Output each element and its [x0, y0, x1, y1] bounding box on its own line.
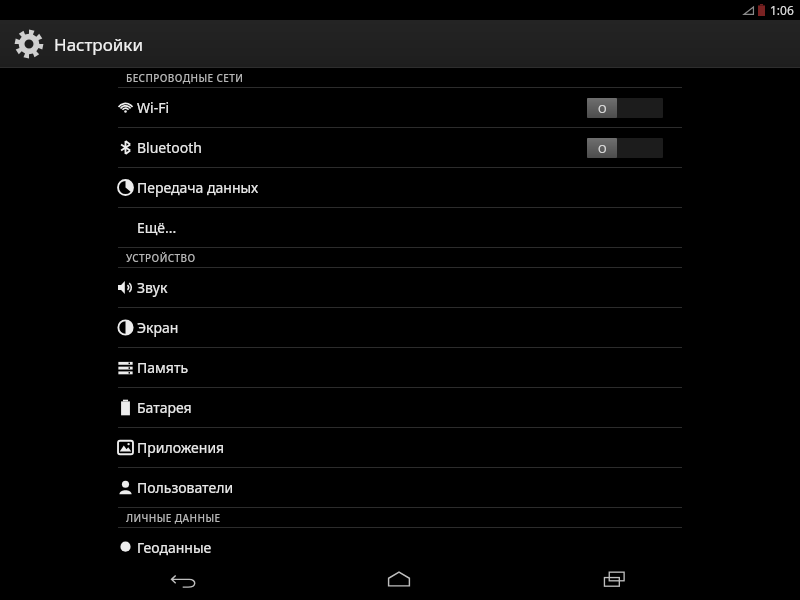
staticText: 1:06 — [770, 2, 794, 18]
staticText: Пользователи — [137, 478, 234, 497]
staticText: Экран — [137, 318, 179, 337]
staticText: Звук — [137, 278, 168, 297]
staticText: БЕСПРОВОДНЫЕ СЕТИ — [126, 71, 244, 85]
button[interactable]: Передача данных — [113, 168, 682, 207]
button[interactable]: Wi-Fi — [113, 88, 682, 127]
button[interactable]: Звук — [113, 268, 682, 307]
button[interactable]: Пользователи — [113, 468, 682, 507]
button[interactable]: Настройки — [0, 20, 800, 68]
staticText: ЛИЧНЫЕ ДАННЫЕ — [126, 511, 221, 525]
button[interactable]: Экран — [113, 308, 682, 347]
staticText: O — [598, 141, 607, 156]
button[interactable]: Геоданные — [113, 528, 682, 567]
button[interactable]: Главный экран — [368, 558, 430, 600]
staticText: Память — [137, 358, 189, 377]
button[interactable]: Переключатель — [587, 138, 663, 158]
staticText: Батарея — [137, 398, 192, 417]
button[interactable]: Недавние приложения — [584, 558, 646, 600]
button[interactable]: Переключатель — [587, 98, 663, 118]
button[interactable]: Приложения — [113, 428, 682, 467]
staticText: Передача данных — [137, 178, 259, 197]
staticText: Ещё... — [137, 218, 177, 237]
button[interactable]: Ещё... — [113, 208, 682, 247]
staticText: УСТРОЙСТВО — [126, 251, 196, 265]
staticText: Настройки — [54, 33, 143, 56]
button[interactable]: Bluetooth — [113, 128, 682, 167]
button[interactable]: Память — [113, 348, 682, 387]
staticText: Bluetooth — [137, 138, 202, 157]
staticText: Приложения — [137, 438, 225, 457]
staticText: Wi-Fi — [137, 98, 170, 117]
staticText: O — [598, 101, 607, 116]
staticText: Геоданные — [137, 538, 212, 557]
button[interactable]: Назад — [153, 558, 215, 600]
button[interactable]: Батарея — [113, 388, 682, 427]
